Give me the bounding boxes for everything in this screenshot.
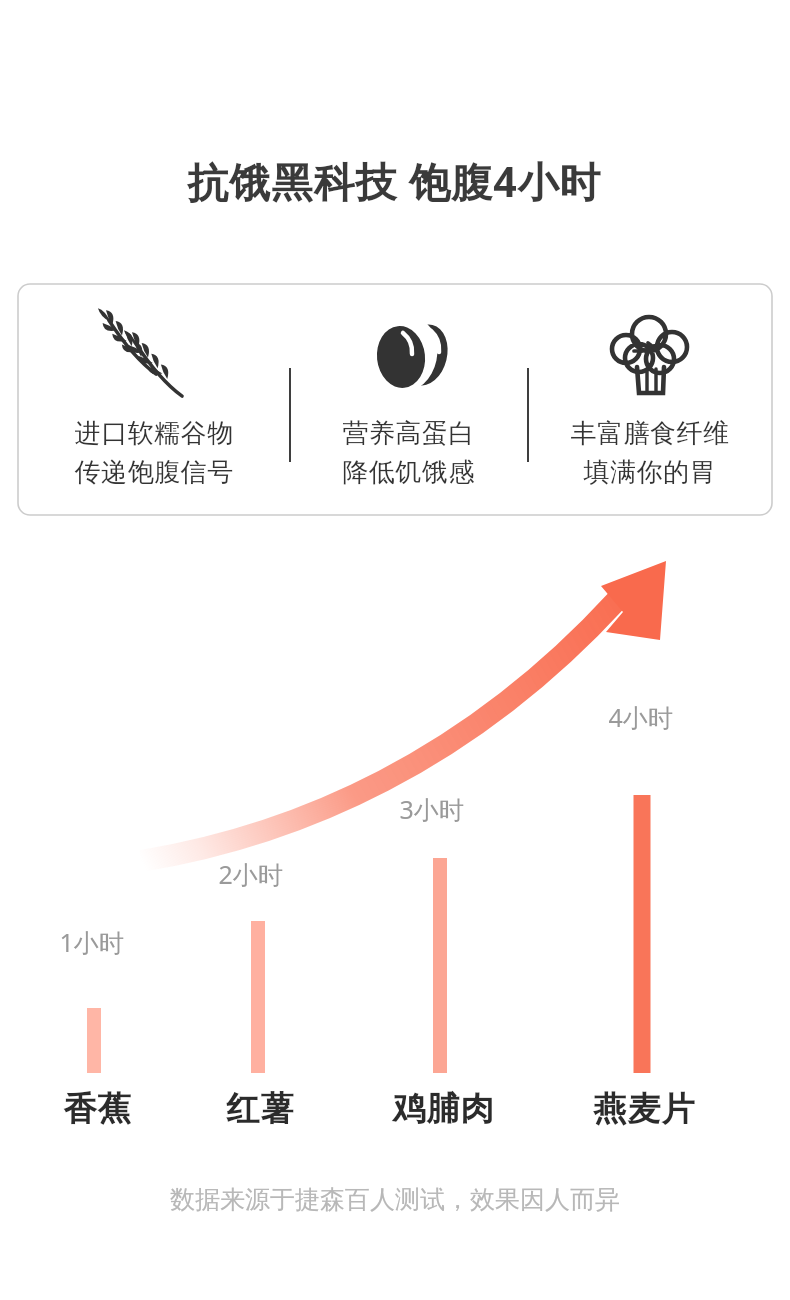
button[interactable]: 抗饿黑科技 饱腹4小时 信息图 bbox=[0, 0, 790, 1300]
